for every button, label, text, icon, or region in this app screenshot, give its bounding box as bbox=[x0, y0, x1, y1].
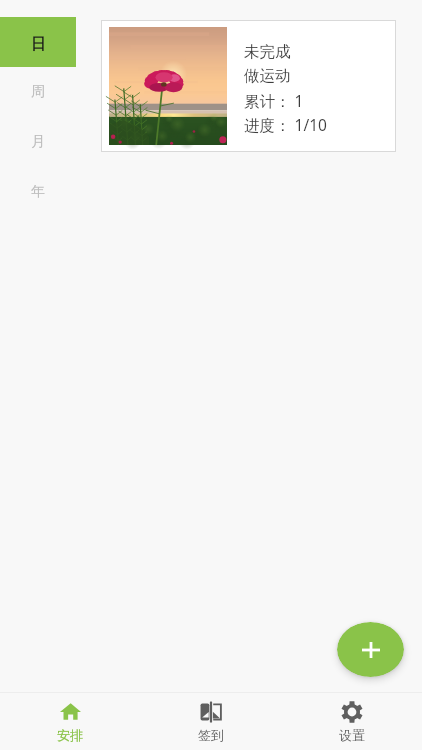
button[interactable]: 年 bbox=[0, 167, 76, 217]
staticText: 签到 bbox=[198, 727, 224, 743]
staticText: 未完成 bbox=[244, 42, 291, 62]
button[interactable]: 未完成 bbox=[101, 20, 396, 152]
button[interactable]: Add new task bbox=[337, 622, 404, 677]
staticText: 安排 bbox=[57, 727, 83, 743]
staticText: 日 bbox=[31, 35, 46, 54]
button[interactable]: 安排 bbox=[0, 693, 140, 750]
staticText: 周 bbox=[31, 83, 45, 101]
button[interactable]: 设置 bbox=[281, 693, 422, 750]
staticText: 做运动 bbox=[244, 66, 291, 86]
button[interactable]: 周 bbox=[0, 67, 76, 117]
button[interactable]: 月 bbox=[0, 117, 76, 167]
staticText: 月 bbox=[31, 133, 45, 151]
button[interactable]: 日 bbox=[0, 17, 76, 67]
staticText: 设置 bbox=[339, 727, 365, 743]
staticText: 进度： 1/10 bbox=[244, 114, 327, 135]
staticText: 累计： 1 bbox=[244, 90, 304, 111]
staticText: 年 bbox=[31, 183, 45, 201]
button[interactable]: 签到 bbox=[140, 693, 281, 750]
